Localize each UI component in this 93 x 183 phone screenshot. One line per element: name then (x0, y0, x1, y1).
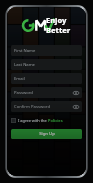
staticText: I agree with the (18, 118, 48, 123)
button[interactable]: Password (11, 87, 82, 98)
button[interactable]: Sign Up (11, 129, 82, 139)
button[interactable]: Confirm Password (11, 101, 82, 112)
button[interactable]: Last Name (11, 59, 82, 70)
button[interactable]: First Name (11, 45, 82, 56)
staticText: Enjoy (46, 15, 67, 25)
staticText: Password (14, 90, 72, 96)
staticText: Confirm Password (14, 104, 72, 110)
staticText: Email (14, 76, 79, 82)
staticText: First Name (14, 48, 79, 54)
button[interactable]: Toggle password visibility (72, 103, 79, 110)
staticText: Last Name (14, 62, 79, 68)
button[interactable]: I agree with the (11, 117, 82, 124)
button[interactable]: Policies (48, 118, 63, 123)
button[interactable]: Email (11, 73, 82, 84)
button[interactable]: Toggle password visibility (72, 89, 79, 96)
staticText: Sign Up (39, 131, 55, 137)
staticText: Better (46, 25, 71, 35)
